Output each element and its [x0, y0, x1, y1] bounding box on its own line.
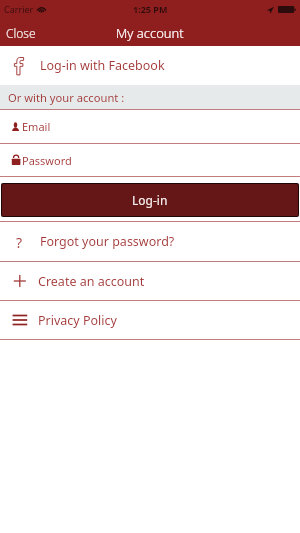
staticText: Log-in with Facebook: [40, 57, 165, 74]
staticText: Carrier: [4, 3, 34, 15]
button[interactable]: Log-in with Facebook: [0, 46, 300, 85]
button[interactable]: Privacy Policy: [0, 301, 300, 339]
button[interactable]: ?: [0, 222, 300, 261]
staticText: Forgot your password?: [40, 233, 175, 250]
staticText: ?: [16, 233, 23, 251]
staticText: Create an account: [38, 273, 145, 290]
staticText: Close: [6, 25, 36, 41]
button[interactable]: Close: [0, 19, 46, 45]
other: Location: [266, 6, 274, 14]
button[interactable]: Email: [0, 110, 300, 143]
button[interactable]: Password: [0, 144, 300, 176]
staticText: Privacy Policy: [38, 312, 117, 329]
staticText: Log-in: [132, 192, 168, 208]
staticText: Password: [22, 153, 72, 168]
staticText: Or with your account :: [8, 90, 125, 105]
staticText: Email: [22, 119, 51, 134]
button[interactable]: Create an account: [0, 262, 300, 300]
other: Battery: [278, 5, 296, 14]
other: Wi-Fi: [37, 5, 46, 13]
staticText: 1:25 PM: [133, 3, 168, 15]
button[interactable]: Log-in: [2, 184, 298, 216]
staticText: My account: [116, 24, 184, 42]
